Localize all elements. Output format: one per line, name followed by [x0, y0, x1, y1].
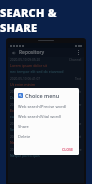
staticText: Note: [74, 122, 82, 126]
button[interactable]: 2020-05-10 09:05:20: [8, 57, 84, 76]
button[interactable]: Web search(Precise word): [18, 104, 76, 109]
button[interactable]: More options: [75, 49, 82, 56]
staticText: Neque porro quis: [10, 153, 40, 158]
staticText: Choice menu: [25, 92, 60, 99]
staticText: Excepteur sint oc: [10, 108, 39, 113]
staticText: 2020-05-10 06:41:07: [10, 77, 41, 81]
button[interactable]: Share: [18, 124, 76, 129]
staticText: Lorem ipsum dolor sit: [10, 63, 48, 68]
staticText: 2020-05-08 17:22:09: [10, 135, 41, 139]
button[interactable]: 2020-05-09 19:02:11: [8, 102, 84, 121]
staticText: cupidatat non proident sunt: [10, 114, 58, 119]
staticText: Search: [71, 90, 82, 94]
button[interactable]: CLOSE: [60, 146, 76, 153]
button[interactable]: 2020-05-08 17:22:09: [8, 134, 84, 147]
staticText: Nemo enim ipsam: [10, 140, 41, 145]
staticText: Delete: [18, 134, 31, 139]
staticText: Text: [75, 135, 82, 139]
staticText: Share: [73, 148, 82, 152]
button[interactable]: 2020-05-09 11:41:38: [8, 121, 84, 134]
staticText: Repository: [19, 49, 45, 56]
staticText: Share: [18, 124, 29, 129]
button[interactable]: 2020-05-10 06:41:07: [8, 76, 84, 89]
staticText: Text: [75, 77, 82, 81]
staticText: Ut enim minim: [10, 82, 36, 87]
staticText: 2020-05-10 09:05:20: [10, 58, 41, 62]
button[interactable]: Delete: [18, 134, 76, 139]
button[interactable]: 2020-05-08 09:13:44: [8, 147, 84, 160]
staticText: Web search(Vital word): [18, 114, 61, 119]
staticText: Browser: [69, 103, 82, 107]
staticText: Web search(Precise word): [18, 104, 67, 109]
staticText: Duis aute irure: [10, 95, 35, 100]
staticText: STORED DATA: [8, 36, 85, 51]
button[interactable]: Web search(Vital word): [18, 114, 76, 119]
button[interactable]: Back: [10, 49, 17, 56]
staticText: 2020-05-09 22:13:55: [10, 90, 41, 94]
staticText: CLOSE: [62, 147, 74, 152]
staticText: 2020-05-09 11:41:38: [10, 122, 41, 126]
staticText: 2020-05-09 19:02:11: [10, 103, 41, 107]
staticText: 2020-05-08 09:13:44: [10, 148, 41, 152]
staticText: nec tempor elit sed do eiusmod: [10, 69, 64, 74]
staticText: Channel: [69, 58, 82, 62]
staticText: SEARCH & SHARE: [0, 5, 92, 35]
button[interactable]: 2020-05-09 22:13:55: [8, 89, 84, 102]
staticText: Sed ut perspici: [10, 127, 35, 132]
